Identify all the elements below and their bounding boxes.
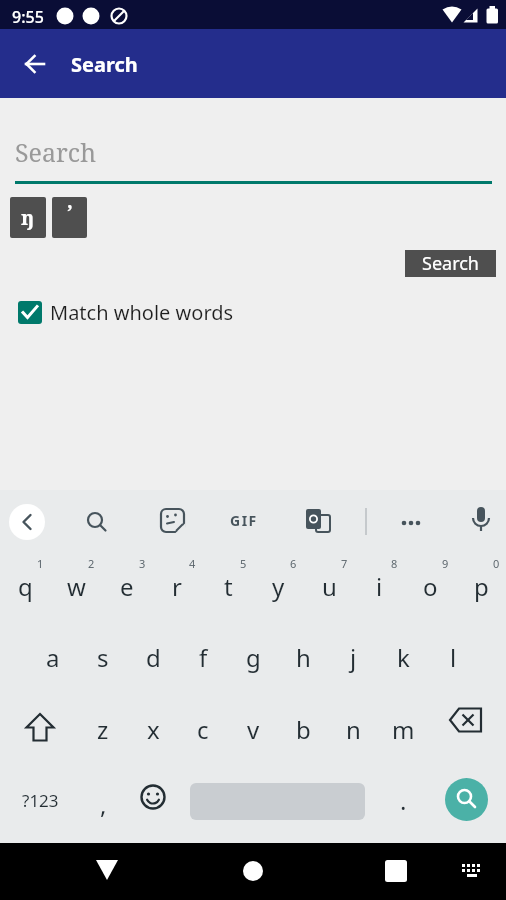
button[interactable]: f <box>178 623 228 691</box>
button[interactable]: a <box>28 623 78 691</box>
staticText: m <box>392 713 415 746</box>
button[interactable]: q <box>0 552 50 620</box>
staticText: Search <box>422 251 479 276</box>
staticText: 4 <box>189 556 196 571</box>
button[interactable]: GIF <box>218 500 270 540</box>
staticText: l <box>450 641 457 674</box>
button[interactable] <box>78 504 114 540</box>
button[interactable]: z <box>78 695 128 763</box>
button[interactable]: ŋ <box>10 197 46 238</box>
button[interactable]: w <box>51 552 101 620</box>
staticText: ʼ <box>67 198 73 225</box>
staticText: j <box>350 641 357 674</box>
staticText: i <box>376 570 383 603</box>
button[interactable]: u <box>304 552 354 620</box>
staticText: GIF <box>230 511 258 530</box>
button[interactable]: j <box>328 623 378 691</box>
button[interactable]: Match whole words <box>18 299 234 326</box>
staticText: q <box>18 570 33 603</box>
button[interactable]: b <box>278 695 328 763</box>
button[interactable] <box>445 778 488 821</box>
staticText: Match whole words <box>50 299 234 326</box>
button[interactable]: d <box>128 623 178 691</box>
staticText: e <box>120 570 134 603</box>
button[interactable]: i <box>354 552 404 620</box>
staticText: Search <box>71 51 138 78</box>
button[interactable] <box>154 504 190 540</box>
button[interactable] <box>128 772 178 828</box>
staticText: b <box>296 713 311 746</box>
button[interactable] <box>17 46 53 82</box>
staticText: 2 <box>88 556 95 571</box>
staticText: 5 <box>240 556 247 571</box>
staticText: 6 <box>290 556 297 571</box>
button[interactable]: g <box>228 623 278 691</box>
staticText: x <box>147 713 160 746</box>
button[interactable]: l <box>428 623 478 691</box>
button[interactable]: y <box>253 552 303 620</box>
button[interactable] <box>378 853 414 889</box>
staticText: 9 <box>442 556 449 571</box>
staticText: u <box>322 570 337 603</box>
button[interactable]: v <box>228 695 278 763</box>
button[interactable]: e <box>102 552 152 620</box>
button[interactable] <box>5 776 75 824</box>
button[interactable]: . <box>378 766 428 834</box>
staticText: ŋ <box>21 204 35 231</box>
button[interactable]: r <box>152 552 202 620</box>
button[interactable] <box>15 694 65 764</box>
staticText: ?123 <box>22 789 59 812</box>
staticText: s <box>97 641 109 674</box>
button[interactable]: x <box>128 695 178 763</box>
button[interactable]: k <box>378 623 428 691</box>
staticText: 7 <box>341 556 348 571</box>
staticText: p <box>474 570 489 603</box>
staticText: o <box>423 570 438 603</box>
button[interactable]: , <box>78 770 128 838</box>
staticText: w <box>67 570 86 603</box>
button[interactable]: t <box>203 552 253 620</box>
staticText: z <box>97 713 109 746</box>
staticText: Search <box>15 135 97 169</box>
staticText: g <box>246 641 261 674</box>
button[interactable]: Search <box>405 250 496 277</box>
button[interactable]: p <box>456 552 506 620</box>
staticText: t <box>224 570 233 603</box>
staticText: y <box>272 570 285 603</box>
button[interactable]: ʼ <box>52 197 87 238</box>
button[interactable]: n <box>328 695 378 763</box>
staticText: 9:55 <box>12 6 44 28</box>
staticText: 8 <box>391 556 398 571</box>
button[interactable]: o <box>405 552 455 620</box>
button[interactable] <box>441 694 491 764</box>
button[interactable]: s <box>78 623 128 691</box>
staticText: d <box>146 641 161 674</box>
staticText: 0 <box>493 556 500 571</box>
staticText: h <box>296 641 311 674</box>
button[interactable]: h <box>278 623 328 691</box>
button[interactable] <box>9 504 45 540</box>
button[interactable]: c <box>178 695 228 763</box>
staticText: 3 <box>139 556 146 571</box>
staticText: f <box>199 641 208 674</box>
button[interactable] <box>300 504 336 540</box>
button[interactable] <box>393 504 429 540</box>
staticText: n <box>346 713 361 746</box>
staticText: v <box>247 713 260 746</box>
button[interactable] <box>463 504 499 540</box>
button[interactable] <box>235 853 271 889</box>
staticText: 1 <box>37 556 44 571</box>
button[interactable] <box>89 852 125 888</box>
staticText: r <box>172 570 182 603</box>
staticText: a <box>46 641 60 674</box>
staticText: , <box>100 788 107 821</box>
button[interactable] <box>454 855 490 887</box>
staticText: c <box>197 713 209 746</box>
button[interactable]: m <box>378 695 428 763</box>
staticText: . <box>400 784 407 817</box>
staticText: k <box>397 641 410 674</box>
